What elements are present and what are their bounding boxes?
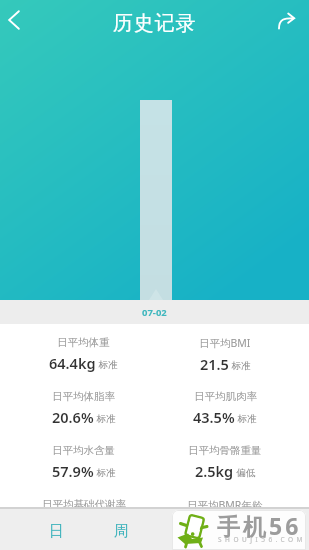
staticText: 日平均体重 — [57, 336, 110, 349]
button[interactable]: 年 — [219, 509, 284, 550]
staticText: 标准 — [229, 359, 251, 372]
button[interactable]: 周 — [89, 509, 154, 550]
staticText: 日平均基础代谢率 — [42, 498, 126, 511]
staticText: 日平均体脂率 — [52, 390, 115, 403]
staticText: 日平均骨骼重量 — [188, 444, 262, 457]
staticText: 日平均BMI — [199, 336, 251, 350]
staticText: 64.4kg — [49, 353, 96, 373]
staticText: 日平均BMR年龄 — [187, 498, 263, 512]
staticText: 07-02 — [142, 306, 167, 319]
staticText: 57.9% — [52, 461, 94, 481]
staticText: 日平均肌肉率 — [194, 390, 257, 403]
staticText: 月 — [179, 522, 194, 541]
staticText: 周 — [114, 522, 129, 541]
staticText: 日平均水含量 — [52, 444, 115, 457]
staticText: 手机56 — [217, 510, 302, 541]
staticText: 20.6% — [52, 407, 94, 427]
staticText: 年 — [244, 522, 259, 541]
staticText: 标准 — [96, 358, 118, 371]
staticText: 标准 — [94, 466, 116, 479]
staticText: 偏低 — [234, 466, 256, 479]
staticText: 日 — [49, 522, 64, 541]
staticText: 标准 — [230, 521, 252, 534]
staticText: 2.5kg — [195, 461, 234, 481]
button[interactable]: 日 — [24, 509, 89, 550]
staticText: 43.5% — [193, 407, 235, 427]
button[interactable]: Share — [265, 0, 309, 43]
staticText: 标准 — [104, 520, 126, 533]
staticText: 1432kcal — [42, 515, 104, 535]
staticText: 历史记录 — [113, 11, 197, 36]
staticText: 21.5 — [200, 354, 229, 374]
staticText: 标准 — [94, 412, 116, 425]
staticText: 26岁 — [198, 516, 230, 536]
staticText: 标准 — [235, 412, 257, 425]
staticText: SHOUJI56.COM — [218, 535, 306, 544]
button[interactable]: 月 — [154, 509, 219, 550]
button[interactable]: Back — [0, 0, 36, 42]
